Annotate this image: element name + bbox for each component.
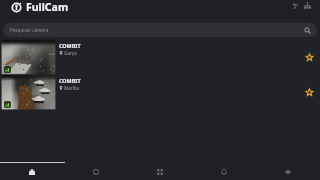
button[interactable]: Messages — [64, 162, 128, 180]
button[interactable]: More — [256, 162, 320, 180]
button[interactable]: Notifications — [192, 162, 256, 180]
staticText: FullCam — [26, 0, 69, 14]
staticText: COMBIT — [59, 42, 81, 49]
staticText: Marília — [64, 85, 79, 91]
staticText: COMBIT — [59, 77, 81, 84]
button[interactable]: Home — [0, 162, 64, 180]
button[interactable]: Pesquisar câmera — [3, 23, 317, 37]
button[interactable]: Network devices — [301, 0, 314, 12]
button[interactable]: Favorite — [302, 85, 316, 99]
button[interactable]: COMBIT — [0, 75, 320, 109]
button[interactable]: Filter — [288, 0, 301, 12]
button[interactable]: FullCam logo — [11, 2, 22, 13]
staticText: Pesquisar câmera — [10, 27, 49, 33]
button[interactable]: Apps — [128, 162, 192, 180]
staticText: Garça — [64, 50, 77, 56]
button[interactable]: Favorite — [302, 50, 316, 64]
button[interactable]: COMBIT — [0, 40, 320, 74]
